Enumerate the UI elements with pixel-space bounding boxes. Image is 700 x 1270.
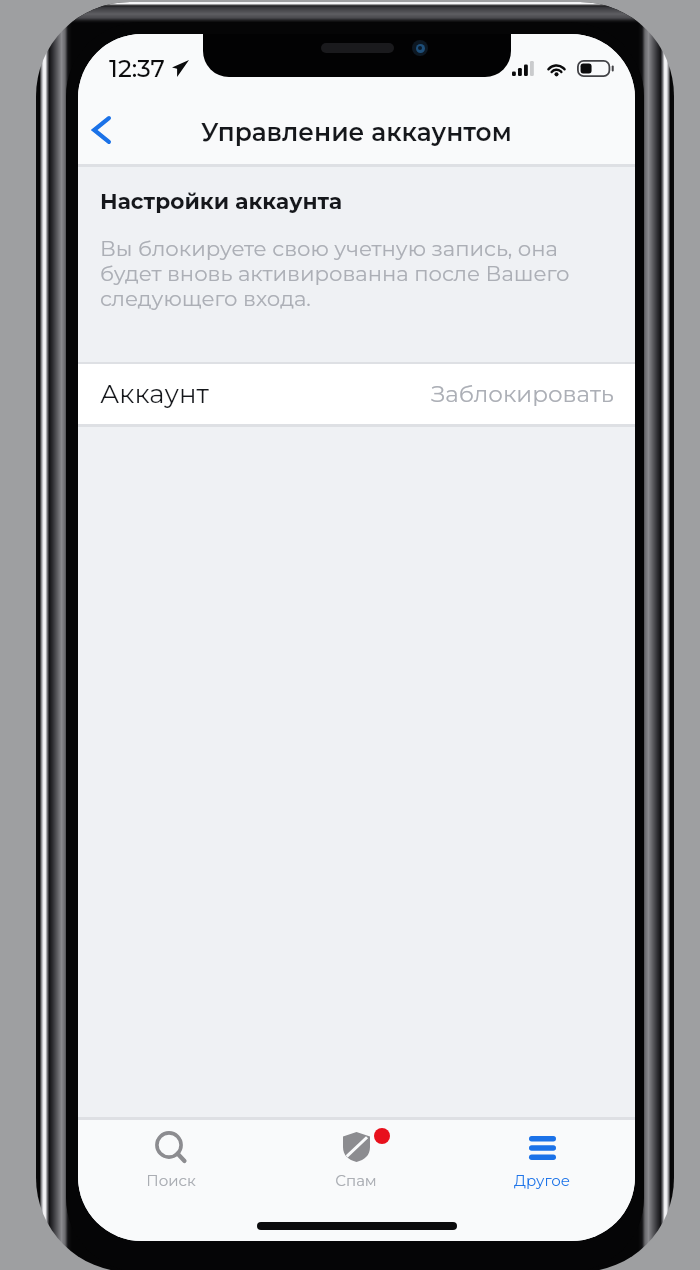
staticText: 12:37 (109, 54, 165, 83)
staticText: Другое (514, 1171, 570, 1189)
staticText: Аккаунт (100, 378, 209, 410)
staticText: Спам (335, 1171, 377, 1189)
staticText: Управление аккаунтом (201, 117, 512, 147)
button[interactable]: Аккаунт (78, 364, 635, 424)
button[interactable]: Спам (263, 1120, 449, 1241)
staticText: Настройки аккаунта (100, 188, 343, 214)
staticText: Поиск (146, 1171, 196, 1189)
button[interactable]: Поиск (78, 1120, 263, 1241)
staticText: Заблокировать (431, 380, 614, 408)
button[interactable]: Back (78, 107, 124, 153)
button[interactable]: Другое (449, 1120, 635, 1241)
staticText: Вы блокируете свою учетную запись, она б… (100, 235, 584, 311)
